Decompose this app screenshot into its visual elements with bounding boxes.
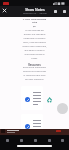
button[interactable] bbox=[21, 114, 43, 138]
button[interactable]: Close bbox=[0, 6, 9, 15]
button[interactable]: Profile bbox=[56, 137, 69, 143]
button[interactable] bbox=[21, 86, 43, 110]
staticText: A Very Long Episode Title by bbox=[22, 17, 47, 28]
button[interactable]: Library bbox=[28, 137, 42, 143]
button[interactable]: Browse bbox=[42, 137, 56, 143]
staticText: In this episode we discuss the changing … bbox=[22, 29, 47, 60]
staticText: Resources bbox=[28, 63, 41, 66]
staticText: Show Notes bbox=[25, 7, 45, 12]
staticText: Episode 214 - 58 min bbox=[23, 12, 47, 15]
button[interactable]: More options bbox=[60, 7, 69, 16]
button[interactable]: Add bbox=[57, 103, 68, 114]
button[interactable]: Search bbox=[14, 137, 28, 143]
staticText: Everything mentioned during the show tod… bbox=[22, 66, 47, 81]
button[interactable] bbox=[0, 129, 69, 133]
button[interactable]: Home bbox=[0, 137, 14, 143]
button[interactable]: Cast bbox=[51, 7, 60, 16]
